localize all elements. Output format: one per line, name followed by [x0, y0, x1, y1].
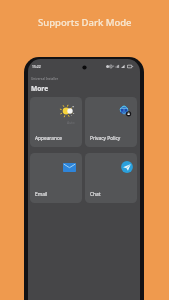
other: Status icons	[106, 63, 135, 70]
staticText: Appearance	[35, 135, 62, 142]
staticText: Supports Dark Mode	[38, 16, 132, 29]
staticText: Universal Installer	[31, 77, 59, 81]
staticText: Privacy Policy	[90, 135, 121, 142]
staticText: 15:22	[32, 64, 41, 69]
staticText: Chat	[90, 191, 101, 198]
button[interactable]: Privacy Policy	[85, 97, 137, 147]
button[interactable]: Auto	[30, 97, 82, 147]
button[interactable]: Chat	[85, 153, 137, 203]
staticText: Email	[35, 191, 48, 198]
button[interactable]: Email	[30, 153, 82, 203]
staticText: More	[31, 84, 49, 93]
staticText: Auto	[67, 120, 75, 125]
